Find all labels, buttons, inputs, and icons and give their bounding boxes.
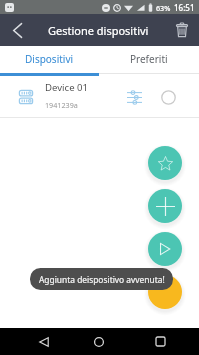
button[interactable]: Back bbox=[29, 328, 59, 355]
button[interactable]: Settings bbox=[121, 76, 147, 118]
button[interactable]: Add device bbox=[148, 189, 182, 223]
button[interactable]: Start bbox=[148, 232, 182, 266]
button[interactable]: Select device bbox=[155, 76, 181, 118]
staticText: 16:51 bbox=[174, 2, 195, 13]
staticText: Gestione dispositivi bbox=[48, 23, 149, 38]
button[interactable]: Dispositivi bbox=[0, 46, 99, 73]
button[interactable]: More bbox=[148, 275, 182, 309]
staticText: Preferiti bbox=[130, 52, 168, 66]
staticText: 1941239a bbox=[45, 100, 78, 110]
staticText: Dispositivi bbox=[25, 52, 74, 66]
staticText: 63% bbox=[156, 3, 171, 13]
staticText: Aggiunta deispositivo avvenuta! bbox=[39, 274, 165, 285]
button[interactable]: Favorites bbox=[148, 146, 182, 180]
button[interactable]: Delete bbox=[168, 14, 196, 46]
button[interactable]: Back bbox=[1, 14, 33, 46]
button[interactable]: Preferiti bbox=[99, 46, 199, 73]
button[interactable]: Home bbox=[84, 328, 114, 355]
staticText: Device 01 bbox=[45, 81, 89, 94]
button[interactable] bbox=[0, 76, 199, 118]
button[interactable]: Recent apps bbox=[145, 328, 175, 355]
